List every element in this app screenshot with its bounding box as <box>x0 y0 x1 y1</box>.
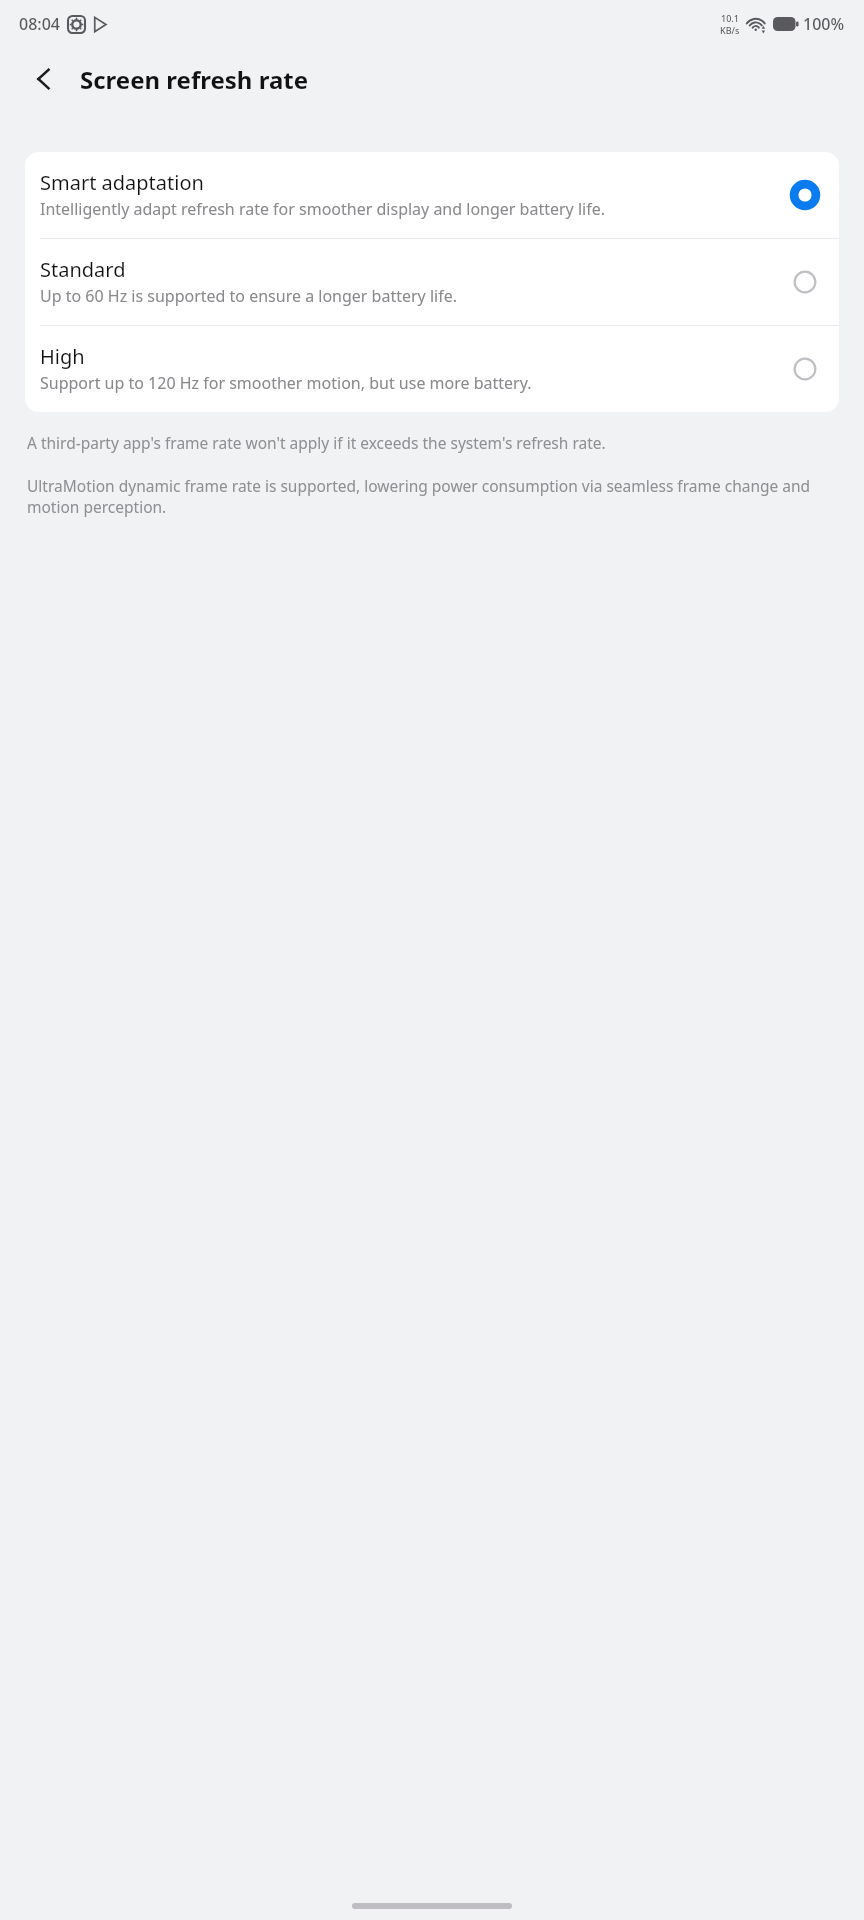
staticText: Screen refresh rate <box>80 63 309 96</box>
staticText: 10.1 <box>721 12 739 24</box>
staticText: A third-party app's frame rate won't app… <box>27 432 606 453</box>
staticText: 08:04 <box>19 13 60 35</box>
staticText: Standard <box>40 256 126 283</box>
button[interactable]: Smart adaptation <box>25 152 839 238</box>
staticText: UltraMotion dynamic frame rate is suppor… <box>27 475 837 518</box>
staticText: Smart adaptation <box>40 169 204 196</box>
staticText: Up to 60 Hz is supported to ensure a lon… <box>40 285 457 307</box>
button[interactable]: High <box>25 326 839 412</box>
button[interactable]: Back <box>22 56 68 102</box>
button[interactable]: Standard <box>25 239 839 325</box>
staticText: 100% <box>803 13 845 35</box>
staticText: Intelligently adapt refresh rate for smo… <box>40 198 605 220</box>
staticText: High <box>40 343 85 370</box>
staticText: KB/s <box>720 24 740 36</box>
staticText: Support up to 120 Hz for smoother motion… <box>40 372 532 394</box>
